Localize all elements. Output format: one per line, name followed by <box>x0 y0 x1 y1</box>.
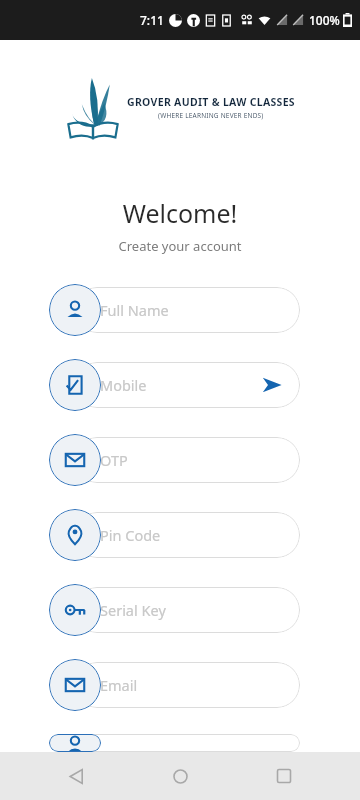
button[interactable]: Recents <box>264 756 304 796</box>
button[interactable]: Field <box>49 734 101 752</box>
staticText: Serial Key <box>100 600 166 620</box>
button[interactable]: Back <box>56 756 96 796</box>
button[interactable]: Mobile <box>49 359 101 411</box>
button[interactable]: Full Name <box>0 284 360 336</box>
button[interactable]: Full Name <box>49 284 101 336</box>
button[interactable]: Email <box>0 659 360 711</box>
button[interactable]: Full Name <box>74 287 300 333</box>
staticText: 7:11 <box>140 12 164 28</box>
button[interactable]: Email <box>74 662 300 708</box>
staticText: GROVER AUDIT & LAW CLASSES <box>127 95 295 109</box>
button[interactable]: Mobile <box>74 362 300 408</box>
button[interactable]: Serial Key <box>74 587 300 633</box>
staticText: Welcome! <box>0 196 360 230</box>
staticText: Pin Code <box>100 525 161 545</box>
staticText: Create your account <box>0 237 360 255</box>
staticText: 100% <box>309 12 340 28</box>
other: Send OTP <box>262 375 282 395</box>
staticText: Full Name <box>100 300 169 320</box>
button[interactable]: Home <box>160 756 200 796</box>
button[interactable]: Serial Key <box>49 584 101 636</box>
button[interactable]: OTP <box>49 434 101 486</box>
button[interactable]: OTP <box>0 434 360 486</box>
staticText: OTP <box>100 450 128 470</box>
staticText: Mobile <box>100 375 147 395</box>
button[interactable]: Pin Code <box>74 512 300 558</box>
button[interactable]: Field <box>0 734 360 752</box>
button[interactable] <box>74 734 300 752</box>
button[interactable]: Serial Key <box>0 584 360 636</box>
button[interactable]: Pin Code <box>0 509 360 561</box>
staticText: (WHERE LEARNING NEVER ENDS) <box>158 111 264 120</box>
button[interactable]: Pin Code <box>49 509 101 561</box>
button[interactable]: OTP <box>74 437 300 483</box>
staticText: Email <box>100 675 138 695</box>
button[interactable]: Email <box>49 659 101 711</box>
button[interactable]: Mobile <box>0 359 360 411</box>
